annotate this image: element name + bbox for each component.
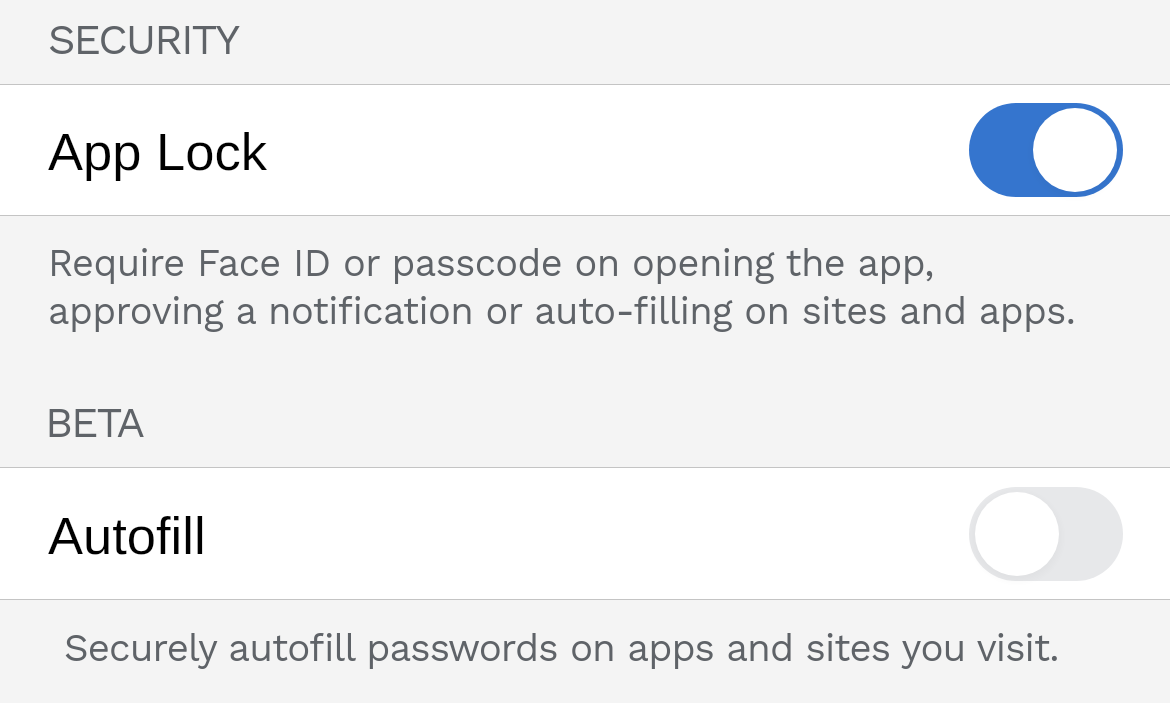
staticText: App Lock bbox=[48, 122, 267, 181]
staticText: Autofill bbox=[48, 506, 206, 565]
staticText: BETA bbox=[45, 397, 143, 447]
staticText: Require Face ID or passcode on opening t… bbox=[48, 241, 1076, 333]
button[interactable]: Autofill off bbox=[969, 487, 1123, 581]
staticText: SECURITY bbox=[48, 14, 239, 64]
button[interactable]: App Lock bbox=[0, 84, 1170, 215]
button[interactable]: App Lock on bbox=[969, 103, 1123, 197]
staticText: Securely autofill passwords on apps and … bbox=[64, 625, 1059, 670]
button[interactable]: Autofill bbox=[0, 468, 1170, 599]
